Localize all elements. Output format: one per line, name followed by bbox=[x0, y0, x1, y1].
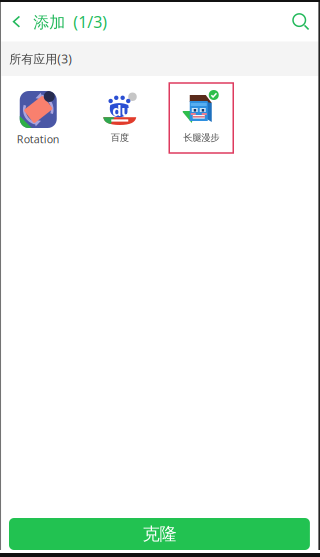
staticText: Rotation bbox=[17, 132, 60, 146]
staticText: 克隆 bbox=[142, 523, 176, 545]
button[interactable]: 添加 (1/3) bbox=[1, 2, 115, 41]
button[interactable]: Rotation bbox=[6, 83, 70, 153]
staticText: du bbox=[112, 101, 131, 120]
staticText: 长腿漫步 bbox=[183, 132, 219, 143]
staticText: 添加 (1/3) bbox=[33, 11, 107, 32]
button[interactable]: du bbox=[88, 83, 152, 153]
staticText: 所有应用(3) bbox=[9, 51, 72, 67]
button[interactable]: 克隆 bbox=[9, 518, 310, 550]
button[interactable]: 搜索 bbox=[278, 2, 318, 41]
button[interactable]: 长腿漫步 bbox=[169, 83, 233, 153]
staticText: 百度 bbox=[111, 132, 129, 143]
